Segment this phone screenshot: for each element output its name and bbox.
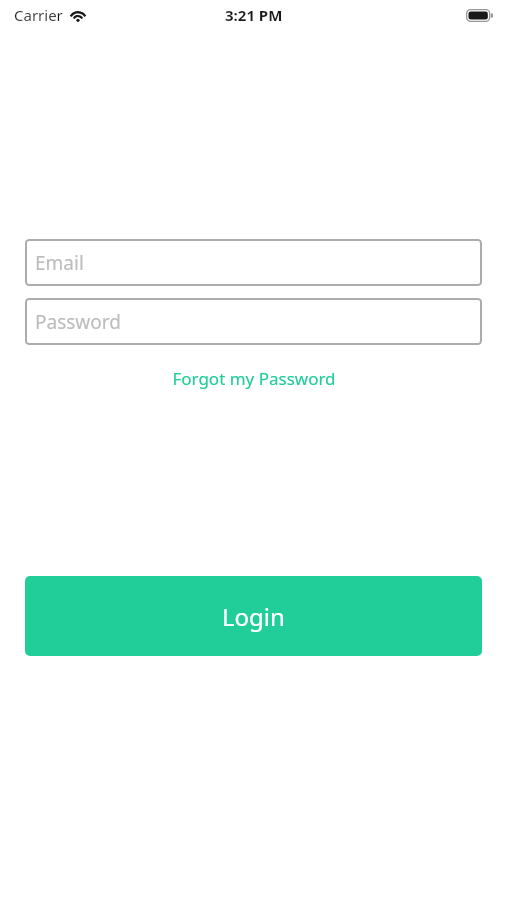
staticText: 3:21 PM: [225, 5, 283, 25]
button[interactable]: Password: [25, 298, 482, 345]
staticText: Password: [35, 309, 121, 335]
button[interactable]: Email: [25, 239, 482, 286]
staticText: Login: [222, 600, 285, 633]
staticText: Email: [35, 250, 84, 276]
button[interactable]: Login: [25, 576, 482, 656]
staticText: Forgot my Password: [172, 367, 336, 390]
other: Battery full: [466, 9, 493, 22]
other: Wi-Fi signal: [69, 8, 87, 22]
staticText: Carrier: [14, 5, 63, 25]
button[interactable]: Forgot my Password: [0, 363, 507, 394]
